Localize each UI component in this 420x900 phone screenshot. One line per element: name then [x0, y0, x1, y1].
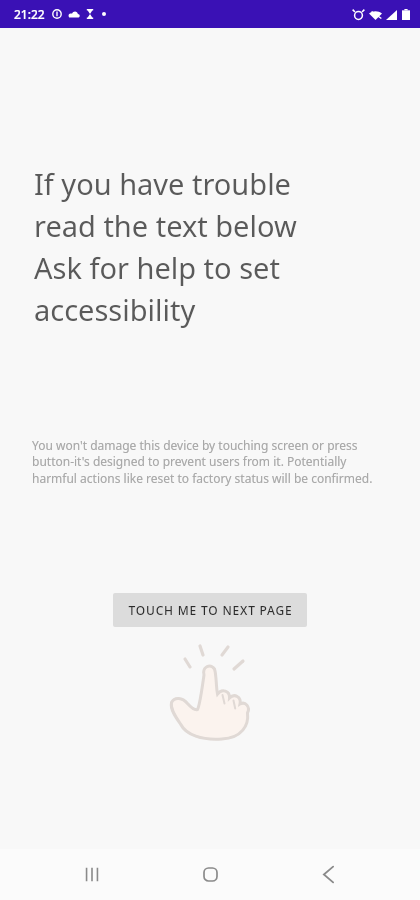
button[interactable]: Recent apps — [66, 849, 118, 900]
button[interactable]: TOUCH ME TO NEXT PAGE — [113, 593, 307, 627]
button[interactable]: Home — [184, 849, 236, 900]
other: Tap hand illustration — [160, 645, 260, 745]
staticText: If you have trouble read the text below … — [34, 164, 400, 329]
button[interactable]: Back — [302, 849, 354, 900]
staticText: 21:22 — [14, 6, 45, 22]
staticText: TOUCH ME TO NEXT PAGE — [128, 602, 293, 618]
staticText: You won't damage this device by touching… — [32, 437, 376, 487]
